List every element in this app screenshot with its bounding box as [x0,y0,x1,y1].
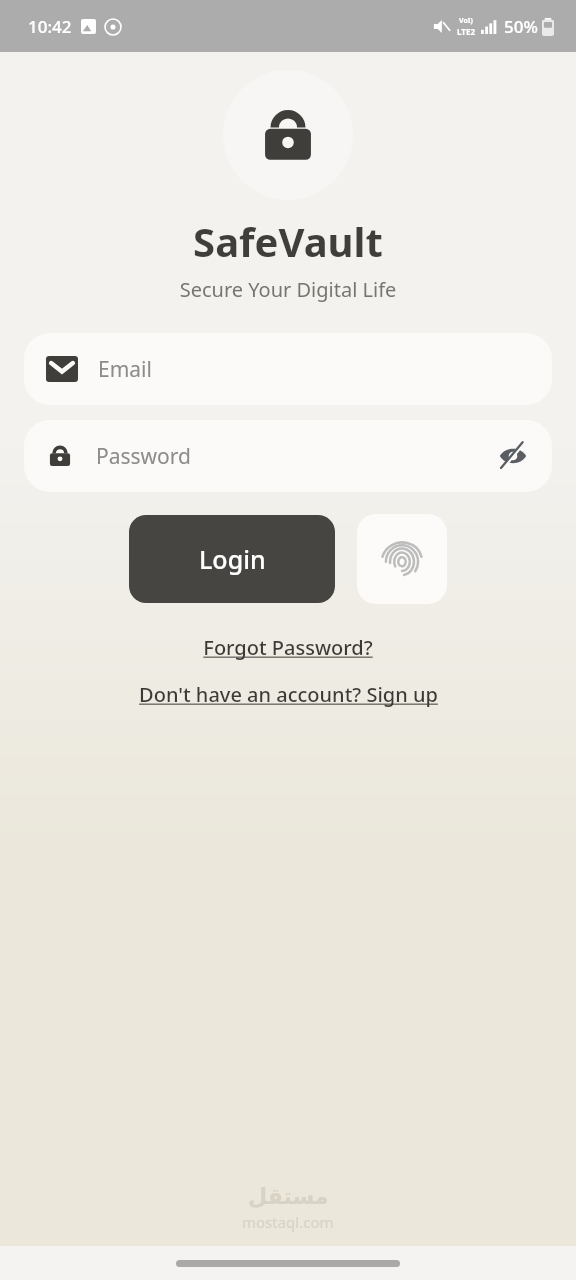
staticText: Don't have an account? Sign up [139,681,438,708]
staticText: mostaql.com [242,1212,334,1232]
button[interactable]: Forgot Password? [0,634,576,661]
staticText: Password [96,442,496,471]
button[interactable]: Login with fingerprint [357,514,447,604]
staticText: 10:42 [28,15,72,38]
staticText: Email [98,355,530,384]
staticText: Secure Your Digital Life [0,276,576,303]
button[interactable]: Password [24,420,552,492]
staticText: مستقل [248,1184,329,1210]
staticText: 50% [504,15,538,38]
button[interactable]: Toggle password visibility [496,439,530,473]
staticText: Forgot Password? [203,634,373,661]
staticText: Login [199,542,266,576]
button[interactable]: Login [129,515,335,603]
staticText: LTE2 [457,26,475,37]
staticText: SafeVault [0,214,576,268]
button[interactable]: Don't have an account? Sign up [0,681,576,708]
staticText: VoI) [459,16,473,26]
button[interactable]: Email [24,333,552,405]
